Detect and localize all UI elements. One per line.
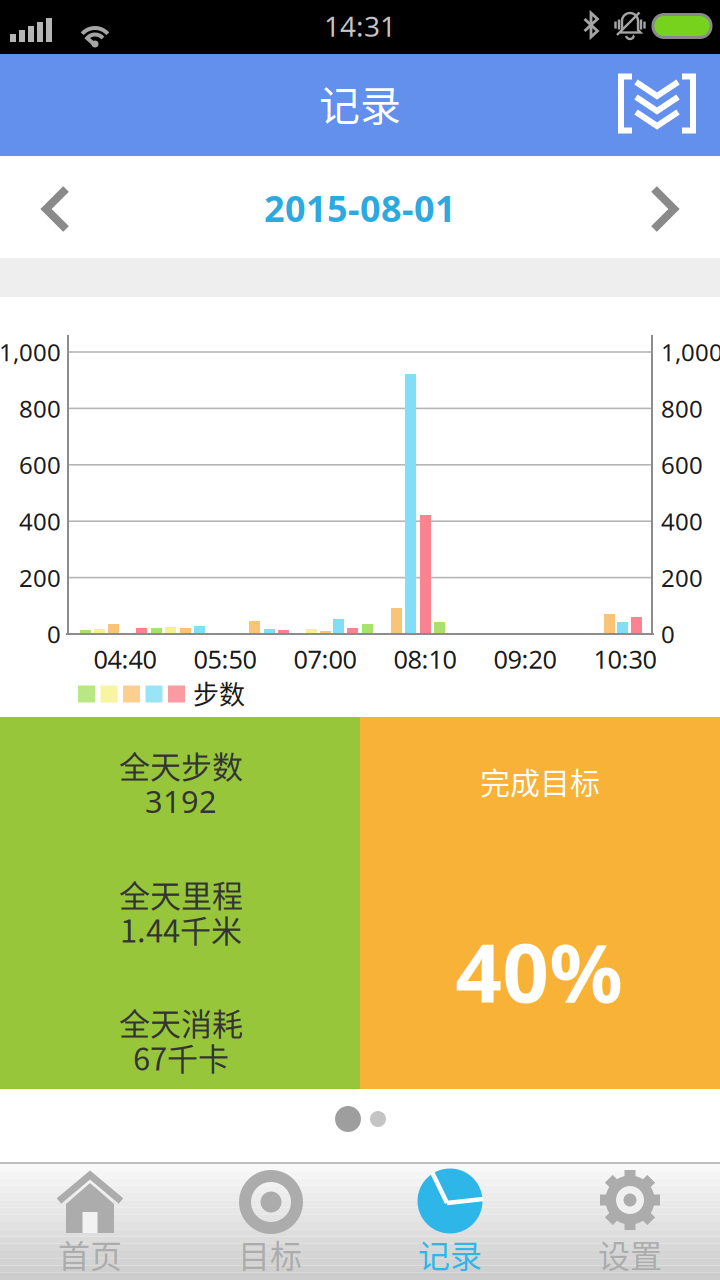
staticText: 600 [19, 449, 61, 481]
staticText: 完成目标 [480, 759, 600, 803]
staticText: 目标 [238, 1231, 302, 1277]
staticText: 400 [19, 505, 61, 537]
staticText: 600 [661, 449, 703, 481]
staticText: 40% [455, 917, 622, 1025]
staticText: 1.44千米 [120, 907, 242, 951]
staticText: 0 [661, 618, 675, 650]
staticText: 设置 [598, 1231, 662, 1277]
staticText: 10:30 [593, 642, 656, 676]
staticText: 800 [19, 392, 61, 424]
staticText: 步数 [193, 674, 245, 712]
staticText: 首页 [58, 1231, 122, 1277]
staticText: 记录 [319, 73, 401, 133]
staticText: 3192 [145, 781, 217, 821]
staticText: 1,000 [0, 336, 61, 368]
staticText: 0 [47, 618, 61, 650]
staticText: 200 [19, 562, 61, 594]
staticText: 2015-08-01 [264, 184, 456, 232]
staticText: 67千卡 [133, 1035, 229, 1079]
staticText: 200 [661, 562, 703, 594]
staticText: 全天里程 [119, 872, 243, 916]
staticText: 800 [661, 392, 703, 424]
staticText: 记录 [418, 1231, 482, 1277]
staticText: 07:00 [293, 642, 356, 676]
staticText: 08:10 [393, 642, 456, 676]
staticText: 04:40 [93, 642, 156, 676]
staticText: 05:50 [193, 642, 256, 676]
staticText: 14:31 [324, 7, 396, 45]
staticText: 09:20 [493, 642, 556, 676]
staticText: 400 [661, 505, 703, 537]
staticText: 1,000 [661, 336, 720, 368]
staticText: 全天消耗 [119, 1000, 243, 1044]
staticText: 全天步数 [119, 743, 243, 787]
